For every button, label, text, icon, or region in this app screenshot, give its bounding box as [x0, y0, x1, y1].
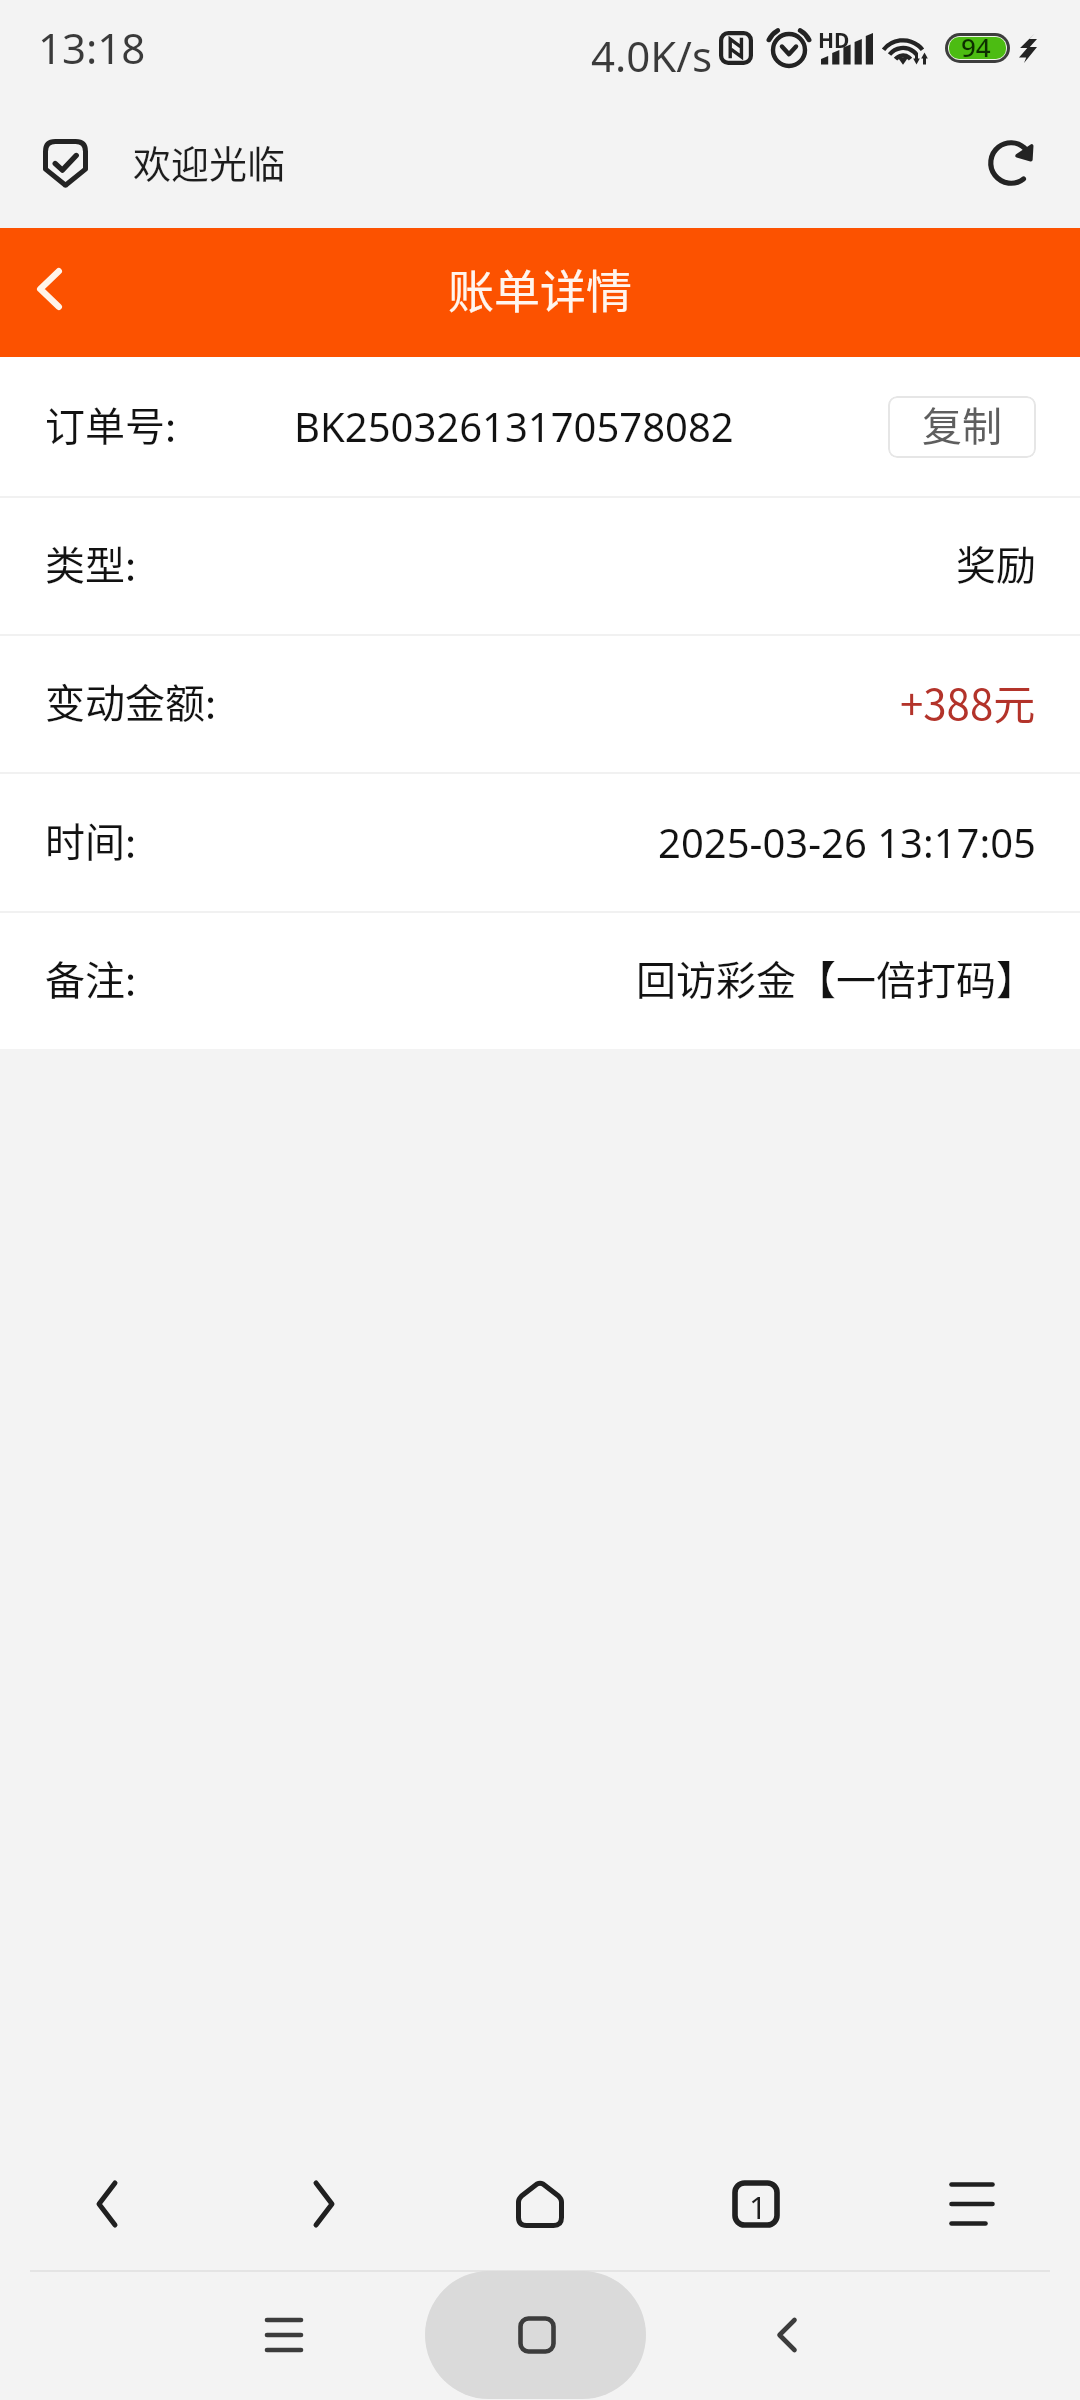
- button[interactable]: Tabs: [648, 2120, 864, 2270]
- button[interactable]: Refresh: [988, 140, 1034, 186]
- staticText: 账单详情: [448, 255, 632, 322]
- staticText: 欢迎光临: [133, 134, 286, 189]
- button[interactable]: Menu: [864, 2120, 1080, 2270]
- button[interactable]: Recents: [214, 2272, 354, 2400]
- staticText: HD: [818, 26, 850, 55]
- staticText: 复制: [922, 396, 1002, 453]
- staticText: 时间:: [45, 811, 137, 869]
- staticText: 94: [961, 29, 991, 64]
- button[interactable]: Home: [425, 2272, 646, 2400]
- button[interactable]: 欢迎光临: [43, 136, 286, 191]
- staticText: 4.0K/s: [591, 27, 713, 84]
- button[interactable]: Back: [0, 228, 110, 357]
- button[interactable]: Home: [432, 2120, 648, 2270]
- button[interactable]: Back: [0, 2120, 216, 2270]
- staticText: 2025-03-26 13:17:05: [658, 815, 1036, 869]
- staticText: 奖励: [956, 534, 1036, 592]
- button[interactable]: Back: [717, 2272, 857, 2400]
- button[interactable]: 复制: [888, 396, 1036, 458]
- staticText: 备注:: [45, 949, 137, 1007]
- staticText: 13:18: [38, 19, 146, 76]
- staticText: 类型:: [45, 534, 137, 592]
- staticText: 1: [749, 2186, 767, 2228]
- staticText: BK25032613170578082: [294, 399, 734, 453]
- staticText: +388元: [900, 671, 1036, 732]
- staticText: 变动金额:: [45, 672, 217, 730]
- staticText: 回访彩金【一倍打码】: [636, 949, 1036, 1007]
- button[interactable]: Forward: [216, 2120, 432, 2270]
- staticText: 订单号:: [45, 395, 177, 453]
